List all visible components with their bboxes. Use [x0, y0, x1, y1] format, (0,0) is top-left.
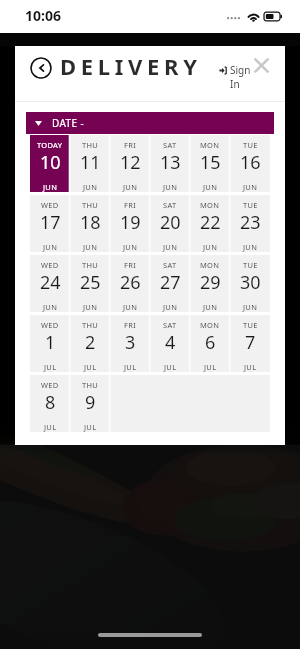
staticText: 6	[205, 330, 216, 355]
staticText: MON	[200, 200, 220, 210]
button[interactable]: WED	[30, 315, 70, 372]
staticText: FRI	[124, 140, 136, 150]
staticText: MON	[200, 320, 220, 330]
staticText: FRI	[124, 200, 136, 210]
button[interactable]: WED	[30, 255, 70, 312]
button[interactable]: SAT	[150, 255, 190, 312]
staticText: THU	[82, 320, 99, 330]
staticText: JUN	[43, 182, 58, 192]
button[interactable]: FRI	[110, 135, 150, 192]
staticText: 26	[120, 270, 141, 295]
staticText: JUN	[123, 242, 138, 252]
button[interactable]: TUE	[230, 195, 270, 252]
button[interactable]: Sign	[218, 63, 252, 91]
staticText: JUL	[44, 422, 57, 432]
staticText: MON	[200, 260, 220, 270]
staticText: JUN	[43, 302, 58, 312]
staticText: FRI	[124, 260, 136, 270]
button[interactable]: THU	[70, 255, 110, 312]
staticText: Sign	[230, 63, 251, 77]
button[interactable]: TUE	[230, 255, 270, 312]
staticText: JUN	[243, 302, 258, 312]
staticText: 10:06	[25, 6, 61, 25]
staticText: WED	[41, 200, 59, 210]
staticText: 19	[120, 210, 141, 235]
button[interactable]: FRI	[110, 315, 150, 372]
button[interactable]: MON	[190, 315, 230, 372]
staticText: JUN	[43, 242, 58, 252]
button[interactable]: TODAY	[30, 135, 70, 192]
button[interactable]: MON	[190, 255, 230, 312]
button[interactable]: TUE	[230, 315, 270, 372]
button[interactable]: WED	[30, 195, 70, 252]
staticText: JUL	[124, 362, 137, 372]
staticText: JUL	[84, 362, 97, 372]
staticText: TODAY	[37, 140, 63, 150]
staticText: 9	[85, 390, 96, 415]
button[interactable]: FRI	[110, 195, 150, 252]
staticText: THU	[82, 140, 99, 150]
button[interactable]: THU	[70, 315, 110, 372]
staticText: JUN	[123, 182, 138, 192]
button[interactable]: Back	[30, 57, 52, 79]
staticText: JUN	[123, 302, 138, 312]
staticText: JUN	[243, 182, 258, 192]
staticText: 4	[165, 330, 176, 355]
staticText: JUN	[163, 242, 178, 252]
staticText: 29	[200, 270, 221, 295]
button[interactable]: MON	[190, 135, 230, 192]
staticText: JUL	[204, 362, 217, 372]
staticText: 30	[240, 270, 261, 295]
button[interactable]: THU	[70, 375, 110, 432]
button[interactable]: Close	[253, 57, 270, 74]
staticText: THU	[82, 260, 99, 270]
staticText: THU	[82, 200, 99, 210]
staticText: 2	[85, 330, 96, 355]
staticText: JUN	[203, 242, 218, 252]
staticText: 8	[45, 390, 56, 415]
staticText: TUE	[243, 200, 258, 210]
staticText: 10	[40, 150, 61, 175]
staticText: JUN	[163, 302, 178, 312]
button[interactable]: SAT	[150, 135, 190, 192]
button[interactable]: TUE	[230, 135, 270, 192]
staticText: SAT	[163, 200, 177, 210]
staticText: 27	[160, 270, 181, 295]
button[interactable]: SAT	[150, 315, 190, 372]
staticText: THU	[82, 380, 99, 390]
staticText: 13	[160, 150, 181, 175]
button[interactable]: FRI	[110, 255, 150, 312]
staticText: 25	[80, 270, 101, 295]
staticText: 22	[200, 210, 221, 235]
staticText: JUL	[244, 362, 257, 372]
staticText: 20	[160, 210, 181, 235]
staticText: In	[230, 77, 240, 91]
staticText: JUN	[83, 182, 98, 192]
staticText: WED	[41, 320, 59, 330]
staticText: 16	[240, 150, 261, 175]
staticText: JUN	[83, 302, 98, 312]
button[interactable]: DATE -	[26, 112, 274, 134]
button[interactable]: WED	[30, 375, 70, 432]
staticText: JUN	[83, 242, 98, 252]
staticText: 23	[240, 210, 261, 235]
staticText: JUN	[203, 182, 218, 192]
button[interactable]: THU	[70, 195, 110, 252]
staticText: TUE	[243, 320, 258, 330]
staticText: 12	[120, 150, 141, 175]
staticText: 7	[245, 330, 256, 355]
staticText: MON	[200, 140, 220, 150]
staticText: TUE	[243, 260, 258, 270]
staticText: TUE	[243, 140, 258, 150]
staticText: 11	[80, 150, 101, 175]
staticText: FRI	[124, 320, 136, 330]
staticText: WED	[41, 260, 59, 270]
staticText: 18	[80, 210, 101, 235]
staticText: SAT	[163, 140, 177, 150]
staticText: JUN	[243, 242, 258, 252]
staticText: JUL	[164, 362, 177, 372]
staticText: 15	[200, 150, 221, 175]
button[interactable]: SAT	[150, 195, 190, 252]
button[interactable]: MON	[190, 195, 230, 252]
button[interactable]: THU	[70, 135, 110, 192]
